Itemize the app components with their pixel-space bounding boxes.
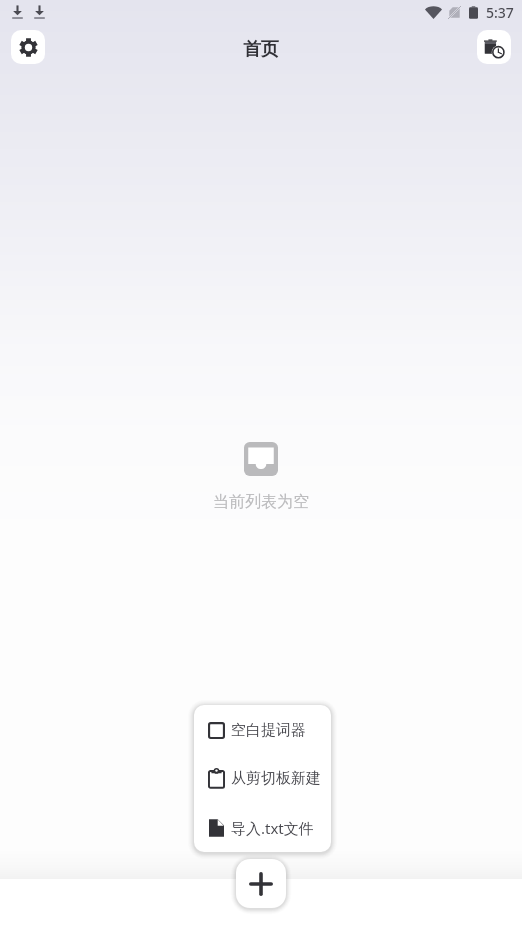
staticText: 当前列表为空 <box>213 492 309 512</box>
staticText: 从剪切板新建 <box>231 769 321 788</box>
staticText: 导入.txt文件 <box>231 818 314 838</box>
staticText: 首页 <box>243 38 279 61</box>
button[interactable]: Settings <box>11 30 45 64</box>
button[interactable]: 从剪切板新建 <box>194 755 331 802</box>
button[interactable]: 空白提词器 <box>194 707 331 754</box>
button[interactable]: 导入.txt文件 <box>194 804 331 851</box>
staticText: 5:37 <box>486 3 514 22</box>
button[interactable]: Recycle bin <box>477 30 511 64</box>
staticText: 空白提词器 <box>231 721 306 740</box>
button[interactable]: Add <box>236 859 286 908</box>
